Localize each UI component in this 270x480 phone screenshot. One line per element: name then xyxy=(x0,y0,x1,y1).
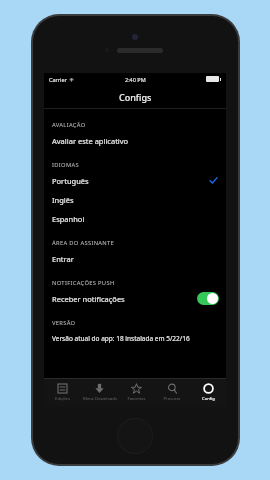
button[interactable]: Português xyxy=(44,171,226,190)
button[interactable]: Procurar xyxy=(154,378,190,407)
staticText: Entrar xyxy=(52,254,74,264)
staticText: Configs xyxy=(119,91,152,103)
staticText: Procurar xyxy=(163,396,181,402)
button[interactable]: Favoritos xyxy=(118,378,154,407)
staticText: 2:40 PM xyxy=(125,76,146,83)
staticText: VERSÃO xyxy=(52,319,76,327)
button[interactable]: Edições xyxy=(44,378,81,407)
staticText: Inglês xyxy=(52,195,74,205)
staticText: Favoritos xyxy=(127,396,146,402)
button[interactable]: Meus Downloads xyxy=(81,378,118,407)
staticText: Espanhol xyxy=(52,214,85,224)
staticText: Avaliar este aplicativo xyxy=(52,136,129,146)
staticText: Versão atual do app: 18 instalada em 5/2… xyxy=(52,334,190,343)
button[interactable]: Config xyxy=(190,378,226,407)
other: Receber notificações toggle xyxy=(197,292,219,305)
staticText: Português xyxy=(52,176,89,186)
staticText: AVALIAÇÃO xyxy=(52,121,86,129)
staticText: IDIOMAS xyxy=(52,161,79,169)
staticText: Meus Downloads xyxy=(83,396,117,402)
button[interactable]: Avaliar este aplicativo xyxy=(44,131,226,150)
staticText: Config xyxy=(202,396,215,402)
staticText: ÁREA DO ASSINANTE xyxy=(52,239,115,247)
button[interactable]: Espanhol xyxy=(44,209,226,228)
staticText: Receber notificações xyxy=(52,294,125,304)
button[interactable]: Receber notificações xyxy=(44,289,226,308)
staticText: Edições xyxy=(55,396,70,402)
button[interactable]: Entrar xyxy=(44,249,226,268)
staticText: NOTIFICAÇÕES PUSH xyxy=(52,279,115,287)
button[interactable]: Inglês xyxy=(44,190,226,209)
staticText: Carrier xyxy=(49,76,67,83)
